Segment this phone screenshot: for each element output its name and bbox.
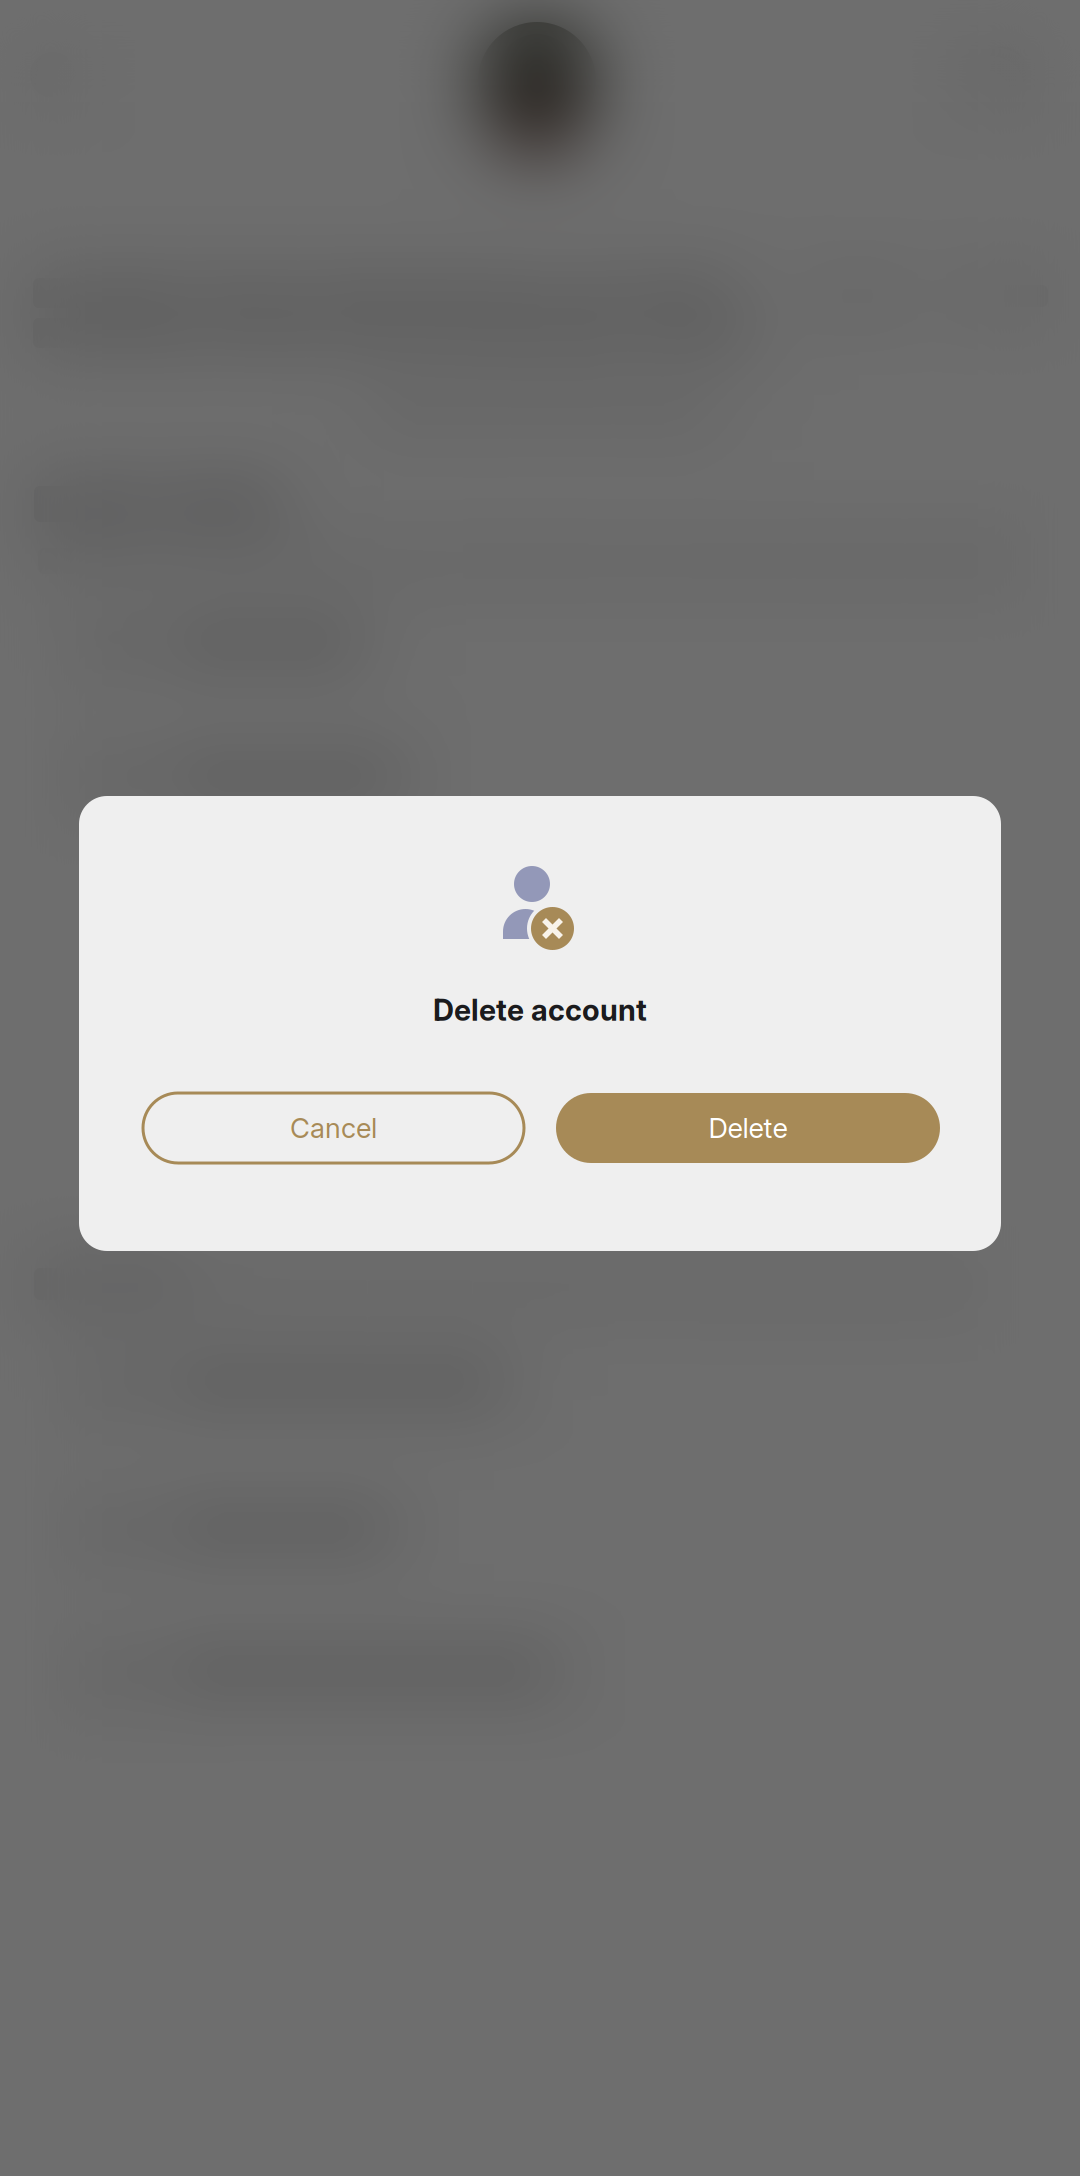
staticText: Delete account (433, 992, 647, 1028)
button[interactable]: Cancel (143, 1093, 524, 1163)
staticText: Delete (708, 1111, 787, 1145)
staticText: Cancel (290, 1111, 377, 1145)
button[interactable]: Delete (556, 1093, 940, 1163)
